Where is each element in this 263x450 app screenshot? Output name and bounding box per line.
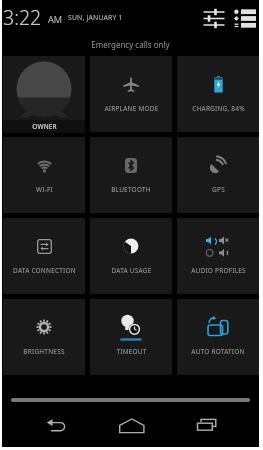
button[interactable]: AIRPLANE MODE — [90, 56, 172, 132]
staticText: GPS — [212, 185, 225, 194]
staticText: Emergency calls only — [2, 39, 259, 50]
button[interactable]: BRIGHTNESS — [3, 299, 85, 375]
staticText: DATA CONNECTION — [13, 266, 76, 275]
button[interactable] — [199, 4, 229, 32]
staticText: BLUETOOTH — [111, 185, 151, 194]
staticText: CHARGING, 84% — [192, 104, 245, 113]
button[interactable]: CHARGING, 84% — [177, 56, 259, 132]
button[interactable] — [230, 4, 260, 32]
button[interactable]: DATA CONNECTION — [3, 218, 85, 294]
staticText: DATA USAGE — [111, 266, 152, 275]
button[interactable] — [37, 411, 73, 439]
staticText: WI-FI — [36, 185, 53, 194]
button[interactable]: AUTO ROTATION — [177, 299, 259, 375]
staticText: OWNER — [32, 122, 57, 131]
button[interactable] — [113, 411, 149, 439]
button[interactable]: GPS — [177, 137, 259, 213]
staticText: BRIGHTNESS — [23, 347, 65, 356]
staticText: SUN, JANUARY 1 — [68, 13, 123, 22]
staticText: AM — [48, 13, 63, 26]
staticText: TIMEOUT — [116, 347, 147, 356]
button[interactable]: WI-FI — [3, 137, 85, 213]
button[interactable]: TIMEOUT — [90, 299, 172, 375]
staticText: 3:22 — [3, 4, 42, 31]
button[interactable]: DATA USAGE — [90, 218, 172, 294]
button[interactable]: AUDIO PROFILES — [177, 218, 259, 294]
button[interactable]: BLUETOOTH — [90, 137, 172, 213]
staticText: AIRPLANE MODE — [104, 104, 159, 113]
button[interactable] — [189, 411, 225, 439]
button[interactable]: OWNER — [3, 56, 85, 132]
staticText: AUTO ROTATION — [191, 347, 245, 356]
staticText: AUDIO PROFILES — [191, 266, 246, 275]
